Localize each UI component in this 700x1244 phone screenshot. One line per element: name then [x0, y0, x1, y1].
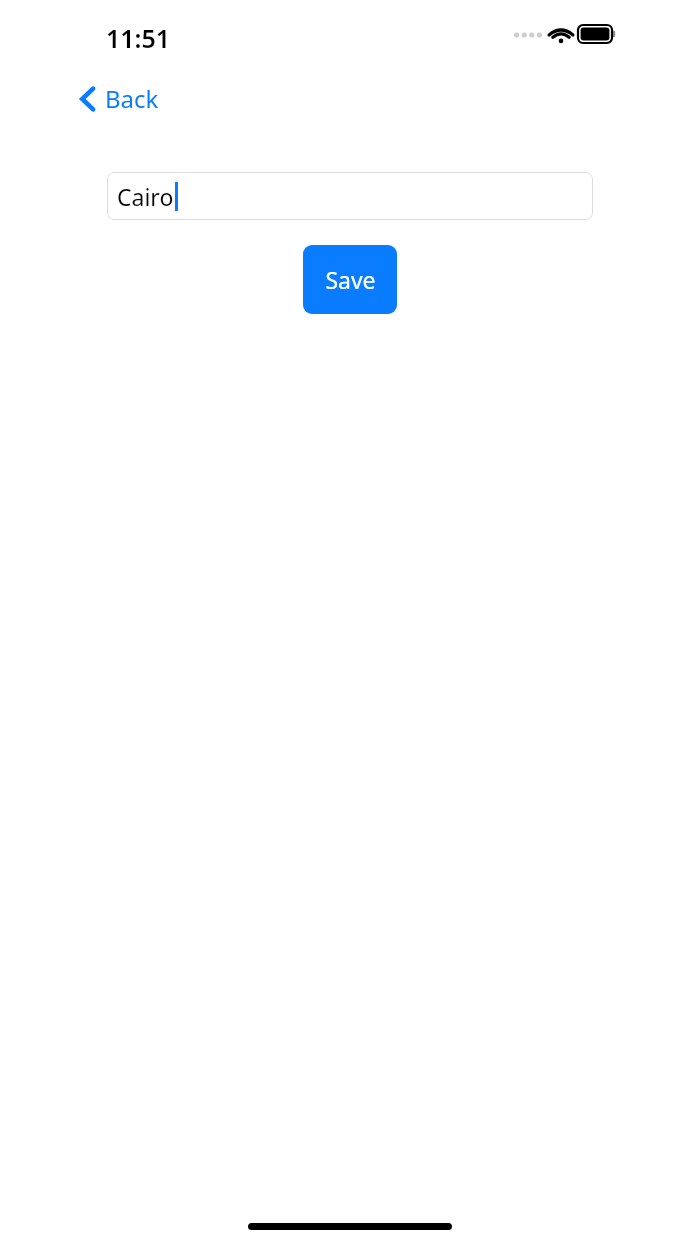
- staticText: 11:51: [106, 21, 171, 55]
- staticText: Back: [105, 82, 159, 115]
- button[interactable]: Save: [303, 245, 397, 314]
- button[interactable]: Back: [72, 76, 167, 121]
- staticText: Cairo: [117, 181, 174, 212]
- button[interactable]: Cairo: [107, 172, 593, 220]
- staticText: Save: [325, 264, 376, 295]
